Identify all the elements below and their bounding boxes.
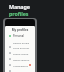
staticText: profiles [9, 10, 29, 17]
staticText: Manage [9, 3, 30, 10]
staticText: Guest session [13, 58, 30, 61]
staticText: Personal [13, 34, 24, 38]
button[interactable]: Add profile [5, 68, 35, 72]
staticText: My profiles [5, 28, 35, 32]
staticText: Work account [13, 46, 30, 49]
staticText: Notifications [13, 64, 28, 67]
staticText: Family group [13, 52, 29, 55]
staticText: Default profile [13, 41, 30, 44]
button[interactable]: Family group [5, 50, 35, 56]
button[interactable]: Personal [5, 34, 35, 44]
button[interactable]: Guest session [5, 56, 35, 62]
button[interactable]: Notifications [5, 62, 35, 68]
button[interactable]: Work account [5, 44, 35, 50]
